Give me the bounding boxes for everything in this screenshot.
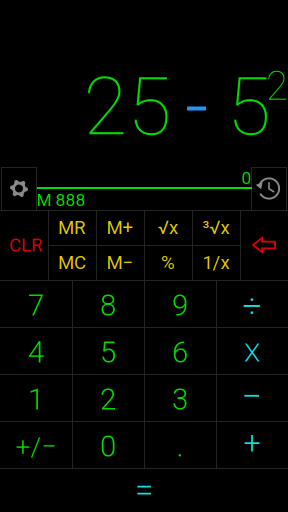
button[interactable]: MR: [48, 210, 96, 245]
staticText: +/−: [15, 431, 56, 462]
button[interactable]: 9: [144, 282, 216, 329]
button[interactable]: M−: [96, 245, 144, 280]
button[interactable]: X: [216, 329, 288, 376]
button[interactable]: M+: [96, 210, 144, 245]
button[interactable]: Backspace: [240, 210, 288, 280]
staticText: MC: [58, 252, 86, 273]
button[interactable]: =: [0, 468, 288, 512]
button[interactable]: .: [144, 423, 216, 470]
staticText: −: [241, 375, 262, 418]
button[interactable]: 4: [0, 329, 72, 376]
staticText: M 888: [36, 190, 85, 210]
staticText: %: [161, 252, 175, 273]
staticText: 3: [172, 382, 188, 417]
button[interactable]: History: [252, 168, 286, 209]
staticText: 25: [83, 60, 171, 154]
button[interactable]: 1/x: [192, 245, 240, 280]
staticText: 9: [172, 288, 188, 323]
button[interactable]: ÷: [216, 282, 288, 329]
staticText: .: [176, 429, 183, 464]
staticText: M−: [106, 252, 133, 273]
staticText: 0: [100, 429, 116, 464]
staticText: =: [135, 470, 153, 510]
button[interactable]: 0: [72, 423, 144, 470]
staticText: 1: [28, 382, 44, 417]
button[interactable]: 3: [144, 376, 216, 423]
button[interactable]: 8: [72, 282, 144, 329]
button[interactable]: +: [216, 420, 288, 467]
button[interactable]: 1: [0, 376, 72, 423]
staticText: √x: [158, 217, 178, 238]
staticText: 5: [227, 60, 271, 154]
staticText: ³√x: [202, 217, 229, 238]
button[interactable]: %: [144, 245, 192, 280]
button[interactable]: Settings: [2, 168, 36, 209]
button[interactable]: 5: [72, 329, 144, 376]
button[interactable]: +/−: [0, 423, 72, 470]
staticText: 4: [28, 335, 44, 370]
button[interactable]: −: [216, 373, 288, 420]
button[interactable]: MC: [48, 245, 96, 280]
staticText: M+: [106, 217, 133, 238]
staticText: 7: [28, 288, 44, 323]
staticText: 2: [266, 63, 288, 109]
staticText: MR: [58, 217, 86, 238]
button[interactable]: 7: [0, 282, 72, 329]
staticText: X: [244, 337, 260, 368]
staticText: 0: [241, 168, 251, 188]
button[interactable]: CLR: [2, 210, 50, 280]
button[interactable]: √x: [144, 210, 192, 245]
staticText: 8: [100, 288, 116, 323]
button[interactable]: 6: [144, 329, 216, 376]
staticText: +: [243, 425, 260, 461]
button[interactable]: ³√x: [192, 210, 240, 245]
staticText: 2: [100, 382, 116, 417]
staticText: 6: [172, 335, 188, 370]
staticText: 5: [100, 335, 116, 370]
button[interactable]: 2: [72, 376, 144, 423]
staticText: 1/x: [202, 252, 229, 273]
staticText: ÷: [242, 286, 261, 325]
staticText: CLR: [9, 234, 43, 256]
